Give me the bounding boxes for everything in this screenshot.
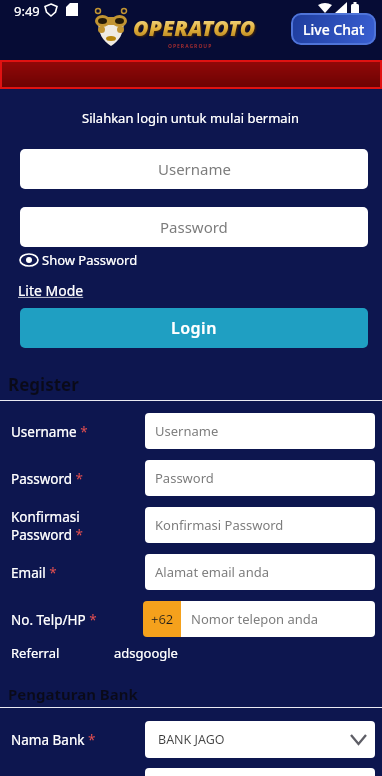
button[interactable]: Show Password (18, 250, 148, 270)
staticText: No. Telp/HP * (11, 611, 97, 629)
button[interactable]: Password (20, 207, 368, 247)
button[interactable]: Username (20, 149, 368, 189)
staticText: Alamat email anda (155, 563, 269, 581)
staticText: Live Chat (303, 20, 365, 39)
staticText: OPERATOTO (133, 14, 256, 43)
staticText: Password * (11, 470, 84, 488)
staticText: Nama Bank * (11, 731, 96, 749)
staticText: Show Password (42, 251, 138, 269)
staticText: Nomor telepon anda (191, 610, 319, 628)
staticText: Lite Mode (18, 281, 84, 299)
button[interactable]: Login (20, 308, 368, 348)
button[interactable]: Lite Mode (18, 281, 88, 299)
staticText: Email * (11, 564, 57, 582)
staticText: OPERAGROUP (168, 43, 213, 50)
staticText: Konfirmasi Password (155, 516, 284, 534)
staticText: adsgoogle (114, 644, 178, 662)
button[interactable]: Username (145, 413, 375, 449)
staticText: Login (171, 317, 217, 339)
staticText: BANK JAGO (158, 731, 225, 748)
staticText: 9:49 (14, 2, 40, 18)
staticText: Konfirmasi Password * (11, 508, 84, 544)
staticText: +62 (151, 610, 174, 628)
button[interactable]: Password (145, 460, 375, 496)
button[interactable]: Nomor telepon anda (181, 601, 375, 637)
staticText: Password (160, 217, 228, 237)
staticText: Username * (11, 423, 88, 441)
staticText: Silahkan login untuk mulai bermain (82, 109, 300, 127)
staticText: Username (158, 159, 231, 179)
staticText: Register (8, 373, 79, 396)
staticText: Referral (11, 644, 60, 662)
staticText: Password (155, 469, 214, 487)
button[interactable]: Konfirmasi Password (145, 507, 375, 543)
button[interactable]: Live Chat (291, 13, 376, 45)
staticText: Username (155, 422, 219, 440)
button[interactable]: BANK JAGO (145, 721, 375, 758)
staticText: Pengaturan Bank (8, 684, 138, 704)
button[interactable]: Alamat email anda (145, 554, 375, 590)
